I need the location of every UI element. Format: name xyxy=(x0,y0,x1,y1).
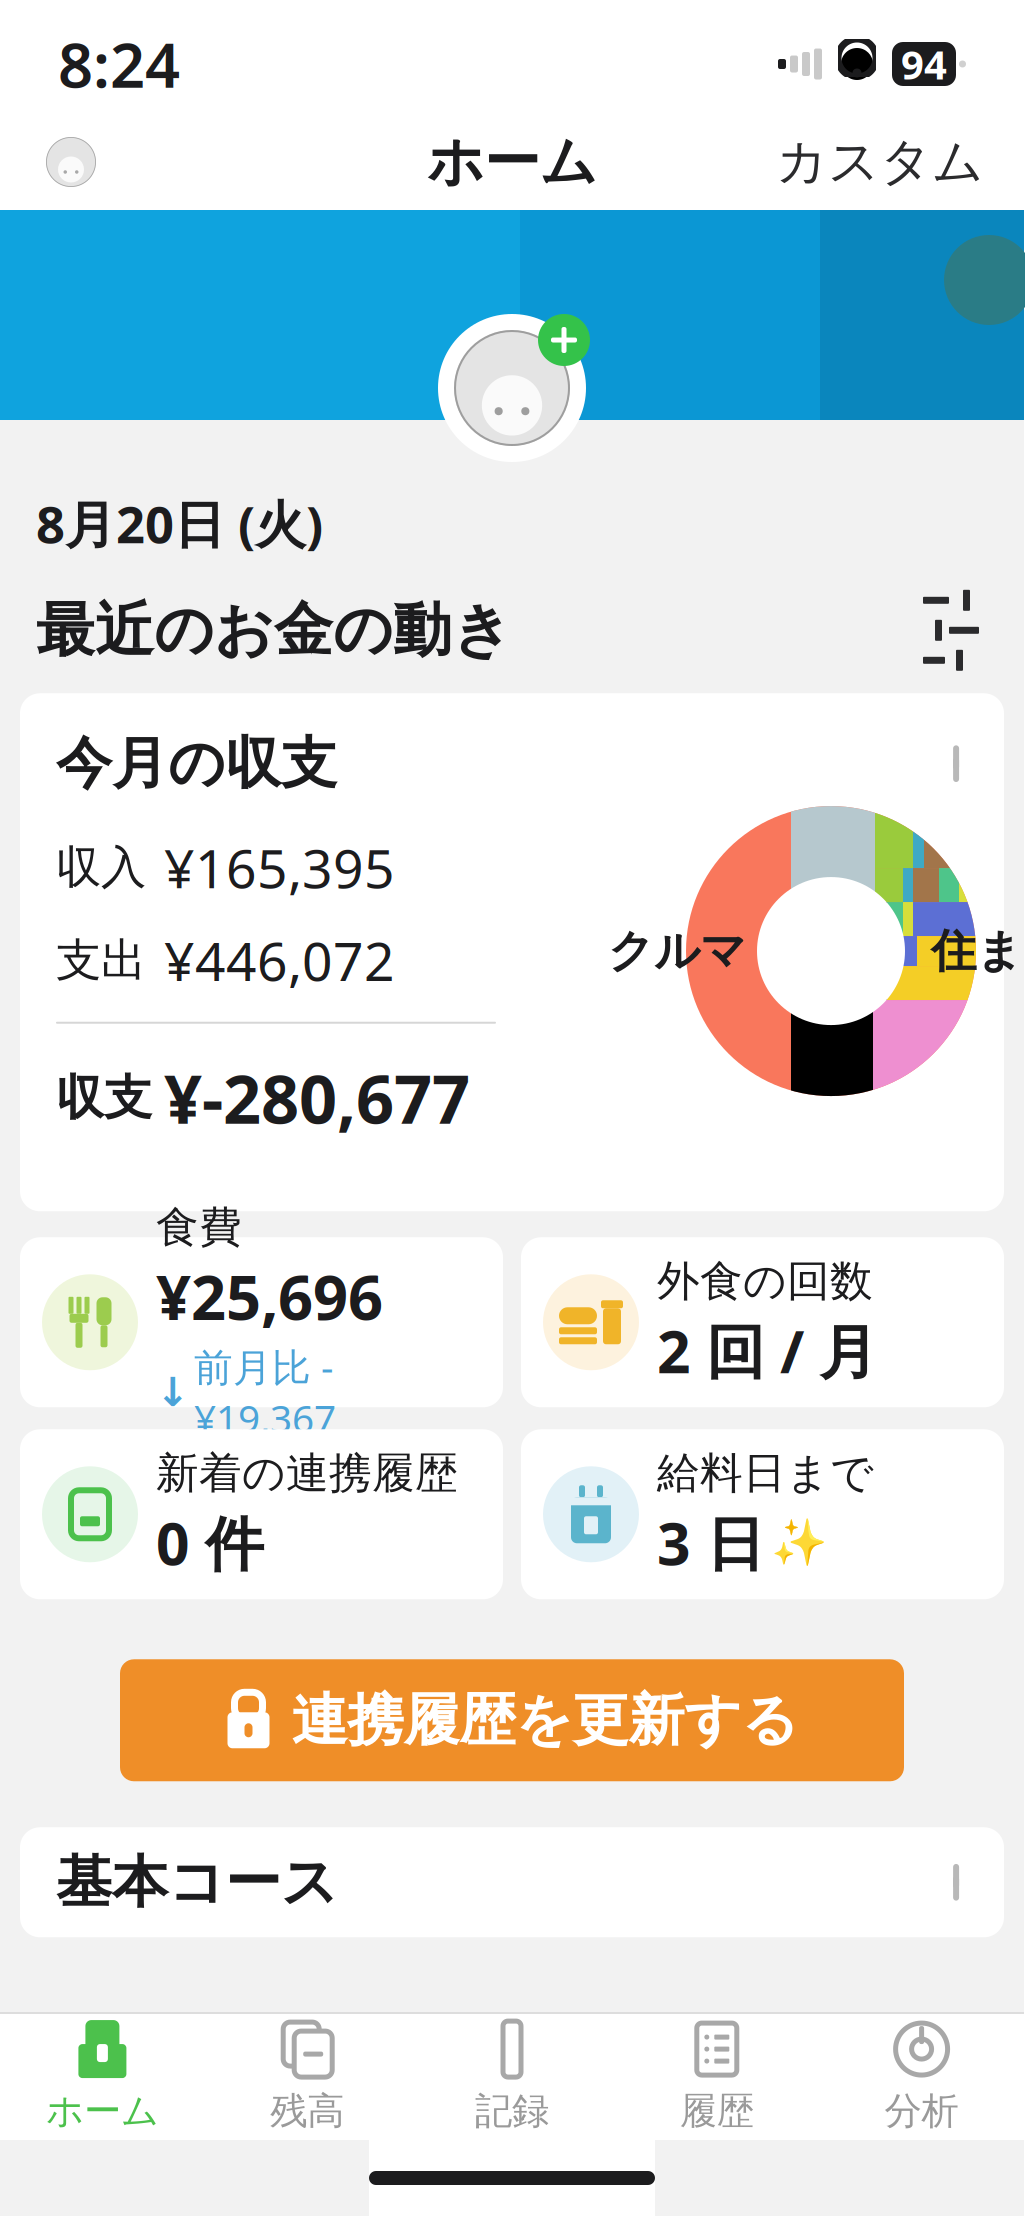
staticText: 最近のお金の動き xyxy=(36,594,512,666)
staticText: ✨ xyxy=(771,1517,827,1568)
staticText: ¥25,696 xyxy=(156,1255,383,1337)
staticText: 今月の収支 xyxy=(56,729,337,798)
button[interactable]: 履歴 xyxy=(614,2014,819,2140)
staticText: ホーム xyxy=(46,2088,159,2134)
button[interactable]: 残高 xyxy=(205,2014,410,2140)
staticText: 基本コース xyxy=(56,1848,338,1917)
button[interactable]: 表示設定 xyxy=(914,593,988,667)
button[interactable]: ホーム xyxy=(0,2014,205,2140)
button[interactable]: 今月の収支 xyxy=(20,693,1004,1211)
staticText: 3 日 xyxy=(657,1503,765,1581)
button[interactable]: 記録 xyxy=(410,2014,614,2140)
staticText: 8月20日 (火) xyxy=(36,490,323,557)
staticText: 分析 xyxy=(885,2088,959,2134)
staticText: ホーム xyxy=(427,128,597,196)
staticText: 住まい xyxy=(931,923,1025,979)
staticText: カスタム xyxy=(776,131,984,193)
staticText: 連携履歴を更新する xyxy=(291,1686,798,1755)
button[interactable]: 基本コース xyxy=(20,1827,1004,1937)
staticText: 新着の連携履歴 xyxy=(156,1447,458,1499)
staticText: 収入 xyxy=(56,840,146,895)
staticText: 給料日まで xyxy=(657,1447,874,1499)
button[interactable]: 給料日まで xyxy=(521,1429,1004,1599)
button[interactable]: 食費 xyxy=(20,1237,503,1407)
button[interactable]: 新着の連携履歴 xyxy=(20,1429,503,1599)
button[interactable]: プロフィール xyxy=(34,125,108,199)
button[interactable]: 分析 xyxy=(819,2014,1024,2140)
button[interactable]: 外食の回数 xyxy=(521,1237,1004,1407)
staticText: 収支 xyxy=(56,1068,152,1127)
staticText: 履歴 xyxy=(680,2088,754,2134)
staticText: 外食の回数 xyxy=(657,1255,873,1307)
staticText: ¥165,395 xyxy=(164,832,395,903)
staticText: ↓ xyxy=(156,1369,190,1415)
staticText: 記録 xyxy=(475,2088,549,2134)
staticText: 2 回 / 月 xyxy=(657,1311,878,1389)
staticText: 94 xyxy=(901,37,947,90)
staticText: 0 件 xyxy=(156,1503,264,1581)
staticText: ¥446,072 xyxy=(164,925,395,996)
button[interactable]: カスタム xyxy=(770,121,990,203)
staticText: ¥-280,677 xyxy=(164,1054,470,1142)
button[interactable]: 連携履歴を更新する xyxy=(120,1659,904,1781)
staticText: クルマ xyxy=(608,923,746,979)
staticText: 支出 xyxy=(56,932,146,988)
staticText: 8:24 xyxy=(58,23,180,105)
staticText: 食費 xyxy=(156,1201,242,1253)
staticText: 残高 xyxy=(270,2088,344,2134)
staticText: 前月比 -¥19,367 xyxy=(194,1341,336,1444)
